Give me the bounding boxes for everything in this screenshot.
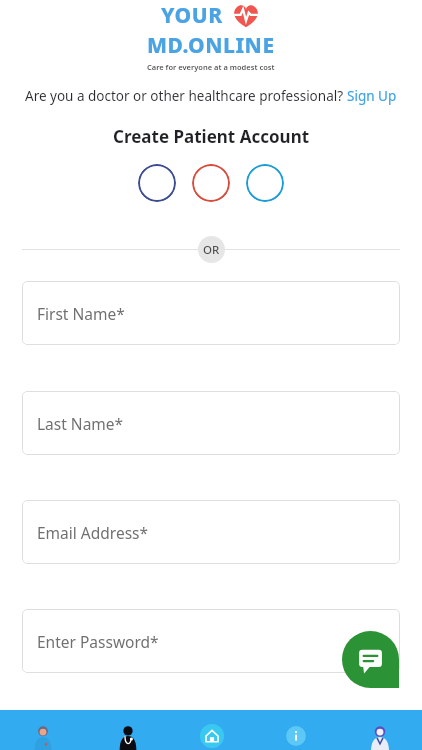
staticText: MD.ONLINE [147,31,275,60]
button[interactable]: First Name* [22,281,400,345]
button[interactable]: Profile [338,710,422,750]
button[interactable]: Home [170,710,254,750]
staticText: First Name* [37,303,125,324]
button[interactable]: Sign up with Google [192,164,230,202]
staticText: Enter Password* [37,631,159,652]
staticText: Are you a doctor or other healthcare pro… [25,87,347,105]
button[interactable]: Doctors [85,710,170,750]
button[interactable]: Sign Up [347,87,397,105]
button[interactable]: Email Address* [22,500,400,564]
staticText: OR [203,242,220,258]
button[interactable]: Information [254,710,338,750]
staticText: Create Patient Account [113,125,310,148]
staticText: Last Name* [37,413,124,434]
staticText: Sign Up [347,87,397,105]
button[interactable]: Last Name* [22,391,400,455]
staticText: YOUR [161,1,223,30]
button[interactable]: Sign up with Facebook [138,164,176,202]
staticText: Care for everyone at a modest cost [147,62,275,72]
button[interactable]: Nurse [0,710,85,750]
button[interactable]: Enter Password* [22,609,400,673]
button[interactable]: Sign up with Twitter [246,164,284,202]
button[interactable]: Chat support [342,631,399,688]
staticText: Email Address* [37,522,149,543]
